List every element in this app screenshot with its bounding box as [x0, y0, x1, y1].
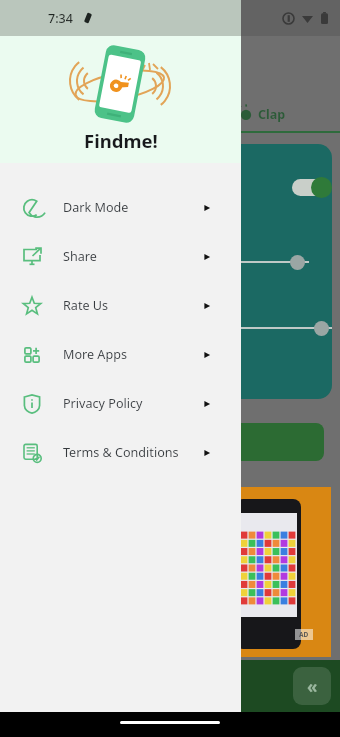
- staticText: Dark Mode: [63, 199, 201, 216]
- button[interactable]: Share: [0, 232, 241, 281]
- button[interactable]: Rate Us: [0, 281, 241, 330]
- button[interactable]: Privacy Policy: [0, 379, 241, 428]
- staticText: Privacy Policy: [63, 395, 201, 412]
- button[interactable]: Terms & Conditions: [0, 428, 241, 477]
- staticText: Hide Me!: [166, 433, 226, 451]
- staticText: Findme!: [84, 128, 158, 153]
- button[interactable]: Dark Mode: [0, 183, 241, 232]
- button[interactable]: More Apps: [0, 330, 241, 379]
- staticText: Share: [63, 248, 201, 265]
- staticText: More Apps: [63, 346, 201, 363]
- staticText: 7:34: [48, 10, 73, 27]
- staticText: Terms & Conditions: [63, 444, 201, 461]
- staticText: «: [307, 675, 318, 698]
- staticText: AD: [299, 630, 309, 639]
- staticText: Clap: [258, 106, 286, 123]
- staticText: Rate Us: [63, 297, 201, 314]
- button[interactable]: Collapse: [293, 667, 331, 705]
- button[interactable]: Hide Me!: [68, 423, 324, 461]
